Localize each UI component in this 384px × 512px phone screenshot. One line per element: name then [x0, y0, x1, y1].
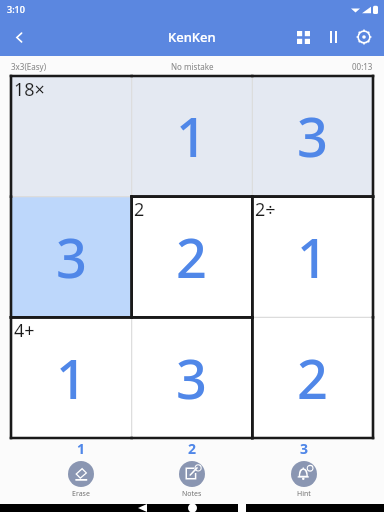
button[interactable]: 1: [131, 76, 252, 196]
staticText: 2: [188, 439, 197, 458]
button[interactable]: Home: [167, 504, 217, 512]
staticText: 1: [176, 99, 207, 173]
staticText: 2÷: [255, 197, 276, 222]
button[interactable]: Hint: [273, 438, 335, 500]
staticText: 3: [300, 439, 309, 458]
button[interactable]: Notes: [161, 438, 223, 500]
button[interactable]: Layout: [288, 22, 318, 52]
button[interactable]: 2: [131, 196, 252, 317]
staticText: 1: [56, 341, 87, 415]
button[interactable]: 3: [252, 76, 373, 196]
staticText: 3: [297, 99, 328, 173]
staticText: No mistake: [171, 61, 214, 72]
staticText: Hint: [297, 489, 311, 499]
button[interactable]: 1: [11, 317, 131, 438]
button[interactable]: Recents: [217, 504, 267, 512]
button[interactable]: Back: [117, 504, 167, 512]
staticText: 2: [176, 220, 207, 294]
staticText: 3x3(Easy): [11, 61, 47, 72]
staticText: 3: [176, 341, 207, 415]
button[interactable]: Pause: [318, 22, 348, 52]
button[interactable]: 3: [11, 196, 131, 317]
button[interactable]: Erase: [50, 438, 112, 500]
button[interactable]: Back: [0, 18, 38, 56]
staticText: 1: [77, 439, 86, 458]
staticText: Erase: [72, 489, 90, 499]
staticText: 18×: [14, 77, 45, 102]
button[interactable]: 18×: [11, 76, 131, 196]
staticText: 3: [56, 220, 87, 294]
staticText: 1: [297, 220, 328, 294]
staticText: 2: [134, 197, 145, 222]
button[interactable]: 2: [252, 317, 373, 438]
staticText: Notes: [182, 489, 202, 499]
staticText: 3:10: [7, 3, 25, 15]
staticText: KenKen: [168, 28, 216, 46]
staticText: 2: [297, 341, 328, 415]
button[interactable]: 3: [131, 317, 252, 438]
button[interactable]: 1: [252, 196, 373, 317]
staticText: 00:13: [352, 61, 373, 72]
button[interactable]: Settings: [348, 21, 380, 53]
staticText: 4+: [14, 318, 35, 343]
